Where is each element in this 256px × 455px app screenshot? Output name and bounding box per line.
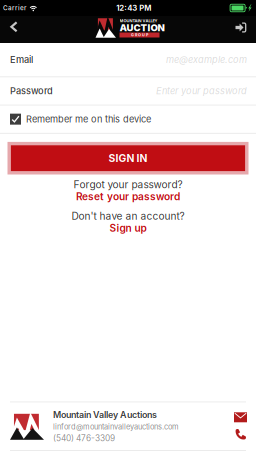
staticText: Enter your password xyxy=(156,85,247,96)
staticText: Carrier xyxy=(3,4,26,12)
staticText: me@example.com xyxy=(166,54,247,65)
button[interactable]: Email xyxy=(234,412,247,422)
button[interactable]: SIGN IN xyxy=(0,134,256,174)
staticText: MOUNTAIN VALLEY xyxy=(119,18,157,23)
staticText: SIGN IN xyxy=(108,152,147,164)
staticText: G R O U P xyxy=(131,33,148,37)
staticText: Reset your password xyxy=(76,190,180,203)
staticText: 12:43 PM xyxy=(116,3,151,13)
button[interactable]: Sign in xyxy=(221,16,256,43)
staticText: Don't have an account? xyxy=(71,210,184,222)
staticText: (540) 476-3309 xyxy=(53,433,115,443)
staticText: Sign up xyxy=(109,222,146,234)
button[interactable]: Call xyxy=(234,428,246,440)
staticText: Remember me on this device xyxy=(26,114,151,125)
button[interactable]: Reset your password xyxy=(76,190,180,202)
staticText: linford@mountainvalleyauctions.com xyxy=(53,422,179,431)
staticText: Forgot your password? xyxy=(73,178,182,191)
staticText: Mountain Valley Auctions xyxy=(53,409,157,420)
button[interactable]: Sign up xyxy=(109,222,146,234)
button[interactable]: Back xyxy=(0,16,32,43)
button[interactable]: Remember me on this device xyxy=(0,105,256,133)
staticText: AUCTION xyxy=(119,22,164,33)
staticText: Password xyxy=(10,85,53,96)
staticText: Email xyxy=(10,54,33,65)
